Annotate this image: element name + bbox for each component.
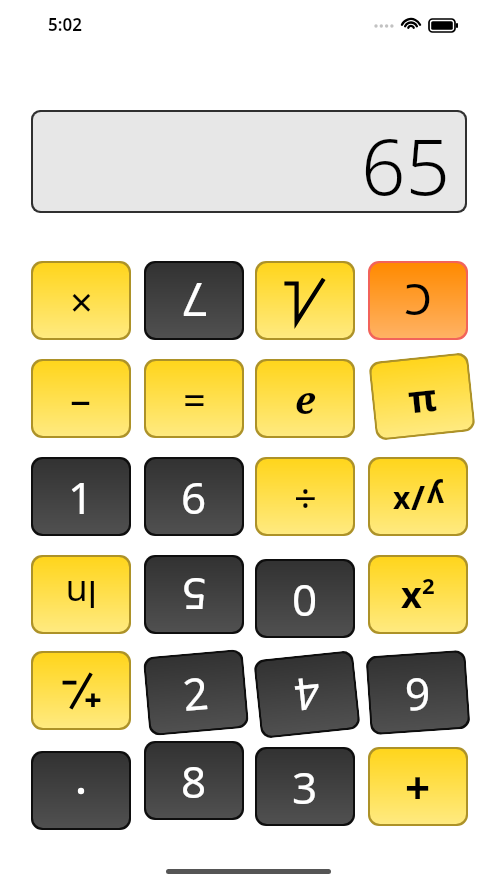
staticText: π <box>405 370 440 424</box>
button[interactable]: clear <box>370 263 466 338</box>
button[interactable]: six <box>146 459 242 534</box>
button[interactable]: zero <box>257 561 353 636</box>
staticText: e <box>295 373 316 425</box>
button[interactable]: seven <box>146 263 242 338</box>
staticText: + <box>405 757 431 817</box>
staticText: 8 <box>181 751 207 811</box>
button[interactable]: plus minus <box>33 653 129 728</box>
staticText: x <box>393 477 411 518</box>
staticText: 5 <box>181 565 207 625</box>
button[interactable]: one <box>33 459 129 534</box>
button[interactable]: multiply <box>33 263 129 338</box>
button[interactable]: pi <box>370 354 474 439</box>
staticText: x <box>401 570 422 619</box>
button[interactable]: plus <box>370 749 466 824</box>
staticText: y <box>426 477 444 518</box>
button[interactable]: minus <box>33 361 129 436</box>
button[interactable]: square root <box>257 263 353 338</box>
staticText: 4 <box>291 664 323 726</box>
staticText: 1 <box>68 467 94 527</box>
staticText: 6 <box>181 467 207 527</box>
staticText: ÷ <box>294 470 317 524</box>
staticText: 2 <box>180 662 212 724</box>
button[interactable]: four <box>255 652 359 737</box>
button[interactable]: decimal point <box>33 753 129 828</box>
staticText: 3 <box>292 757 318 817</box>
staticText: 2 <box>422 570 435 600</box>
staticText: 9 <box>403 662 433 724</box>
button[interactable]: e <box>257 361 353 436</box>
button[interactable]: x squared <box>370 557 466 632</box>
button[interactable]: divide <box>257 459 353 534</box>
button[interactable]: natural log <box>33 557 129 632</box>
staticText: × <box>70 274 93 328</box>
button[interactable]: 65 <box>33 112 465 211</box>
button[interactable]: x to the power y <box>370 459 466 534</box>
staticText: 7 <box>181 269 208 332</box>
staticText: = <box>183 372 206 426</box>
button[interactable]: two <box>145 651 247 734</box>
button[interactable]: eight <box>146 743 242 818</box>
staticText: 65 <box>361 112 451 205</box>
staticText: 5:02 <box>48 13 82 36</box>
button[interactable]: three <box>257 749 353 824</box>
staticText: / <box>411 474 426 520</box>
staticText: – <box>70 370 92 427</box>
staticText: 0 <box>292 569 318 629</box>
button[interactable]: nine <box>367 652 468 733</box>
button[interactable]: equals <box>146 361 242 436</box>
button[interactable]: five <box>146 557 242 632</box>
staticText: ln <box>65 570 97 619</box>
staticText: C <box>404 271 432 331</box>
